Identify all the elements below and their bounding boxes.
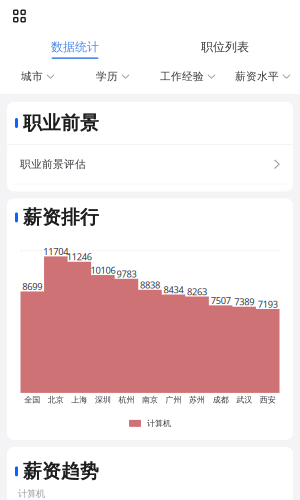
staticText: 成都 (213, 395, 229, 405)
staticText: 全国 (24, 395, 40, 405)
staticText: 职业前景评估 (20, 158, 86, 171)
staticText: 数据统计 (51, 40, 99, 54)
staticText: 杭州 (118, 395, 134, 405)
button[interactable]: 职业前景评估 (7, 145, 293, 184)
staticText: 工作经验 (160, 70, 204, 83)
staticText: 11246 (67, 250, 92, 263)
staticText: 8838 (140, 279, 160, 291)
staticText: 计算机 (18, 488, 45, 499)
staticText: 薪资趋势 (23, 460, 99, 483)
button[interactable]: 学历 (75, 59, 150, 94)
button[interactable]: 数据统计 (0, 32, 150, 59)
staticText: 职位列表 (201, 40, 249, 54)
staticText: 广州 (165, 395, 181, 405)
staticText: 7193 (258, 298, 278, 310)
button[interactable]: 城市 (0, 59, 75, 94)
staticText: 上海 (71, 395, 87, 405)
staticText: 11704 (43, 245, 68, 258)
staticText: 职业前景 (23, 111, 99, 134)
staticText: 学历 (96, 70, 118, 83)
button[interactable]: 工作经验 (150, 59, 225, 94)
staticText: 计算机 (147, 418, 171, 428)
staticText: 8263 (187, 285, 207, 298)
staticText: 9783 (116, 268, 136, 280)
staticText: 薪资排行 (23, 206, 99, 229)
staticText: 7389 (234, 295, 254, 308)
staticText: 城市 (21, 70, 43, 83)
button[interactable]: Menu (0, 2, 36, 30)
button[interactable]: 薪资水平 (225, 59, 300, 94)
staticText: 8434 (163, 283, 183, 296)
staticText: 苏州 (189, 395, 205, 405)
staticText: 10106 (90, 264, 115, 276)
button[interactable]: 职位列表 (150, 32, 300, 59)
staticText: 武汉 (236, 395, 252, 405)
staticText: 北京 (48, 395, 64, 405)
staticText: 西安 (260, 395, 276, 405)
staticText: 8699 (22, 280, 42, 293)
staticText: 薪资水平 (235, 70, 279, 83)
staticText: 南京 (142, 395, 158, 405)
staticText: 7507 (211, 294, 231, 307)
staticText: 深圳 (95, 395, 111, 405)
